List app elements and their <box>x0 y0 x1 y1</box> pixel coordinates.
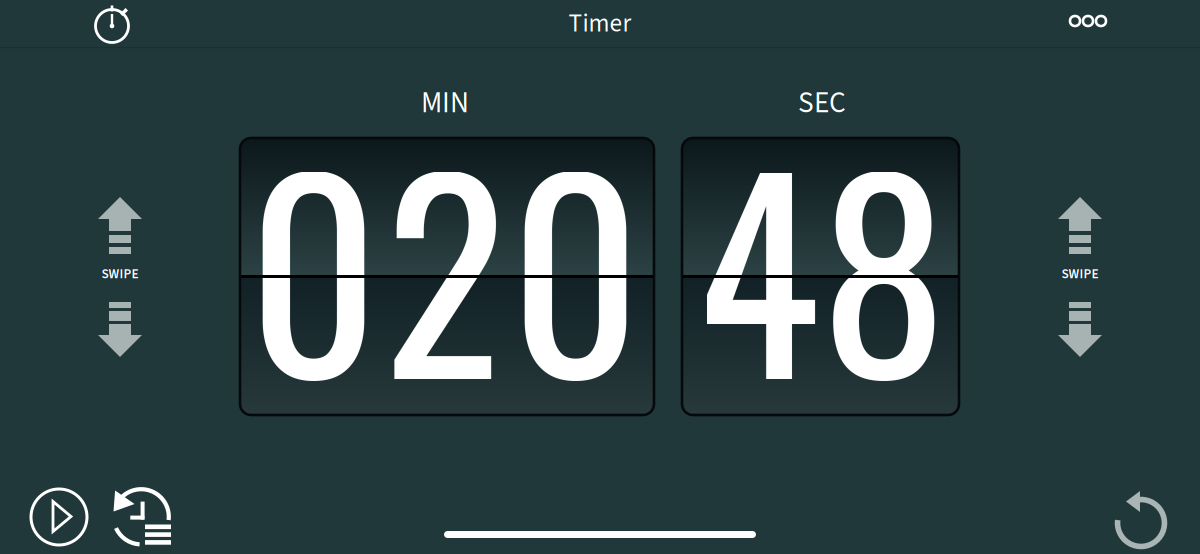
staticText: 020 <box>248 77 641 452</box>
staticText: SWIPE <box>101 264 138 283</box>
button[interactable]: Recents <box>112 488 172 546</box>
button[interactable]: Swipe to change seconds <box>1050 194 1110 362</box>
button[interactable]: Start timer <box>29 487 89 547</box>
button[interactable]: Swipe to change minutes <box>90 194 150 362</box>
button[interactable]: Reset timer <box>1114 494 1170 550</box>
staticText: MIN <box>421 82 469 124</box>
staticText: 48 <box>696 77 946 452</box>
staticText: Timer <box>568 5 631 42</box>
button[interactable]: Stopwatch <box>90 1 134 45</box>
button[interactable]: More options <box>1060 0 1116 43</box>
staticText: SEC <box>798 82 846 124</box>
staticText: SWIPE <box>1061 264 1098 283</box>
